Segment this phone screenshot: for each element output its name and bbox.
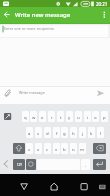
staticText: 12!? bbox=[17, 163, 22, 167]
staticText: n bbox=[72, 146, 75, 152]
staticText: t bbox=[60, 114, 62, 120]
button[interactable]: t bbox=[57, 111, 64, 122]
button[interactable] bbox=[0, 24, 110, 38]
button[interactable]: n bbox=[70, 143, 77, 154]
staticText: m bbox=[80, 146, 85, 152]
staticText: c bbox=[46, 146, 49, 152]
staticText: g bbox=[63, 130, 66, 136]
button[interactable]: a bbox=[26, 127, 33, 138]
button[interactable] bbox=[13, 176, 35, 196]
button[interactable]: r bbox=[48, 111, 55, 122]
staticText: Write message bbox=[19, 90, 45, 95]
staticText: d bbox=[46, 130, 49, 136]
button[interactable]: k bbox=[88, 127, 95, 138]
staticText: q bbox=[24, 114, 27, 120]
button[interactable]: y bbox=[66, 111, 73, 122]
button[interactable]: q bbox=[22, 111, 29, 122]
button[interactable]: x bbox=[35, 143, 42, 154]
staticText: h bbox=[72, 130, 75, 136]
staticText: w bbox=[32, 114, 36, 120]
button[interactable] bbox=[93, 143, 106, 154]
button[interactable]: b bbox=[61, 143, 68, 154]
button[interactable]: 12!? bbox=[13, 159, 25, 170]
button[interactable]: m bbox=[79, 143, 86, 154]
button[interactable]: p bbox=[101, 111, 108, 122]
button[interactable]: j bbox=[79, 127, 86, 138]
staticText: f bbox=[56, 130, 58, 136]
staticText: j bbox=[82, 130, 84, 136]
button[interactable]: s bbox=[35, 127, 42, 138]
staticText: l bbox=[100, 130, 102, 136]
button[interactable] bbox=[26, 159, 36, 170]
button[interactable] bbox=[0, 87, 110, 104]
button[interactable] bbox=[43, 176, 65, 196]
button[interactable]: h bbox=[70, 127, 77, 138]
staticText: Enter one or more recipients: bbox=[4, 26, 55, 31]
button[interactable]: i bbox=[84, 111, 91, 122]
button[interactable]: d bbox=[44, 127, 51, 138]
button[interactable]: f bbox=[53, 127, 60, 138]
staticText: r bbox=[51, 114, 53, 120]
button[interactable]: g bbox=[61, 127, 68, 138]
button[interactable] bbox=[99, 9, 110, 21]
staticText: s bbox=[37, 130, 40, 136]
staticText: y bbox=[68, 114, 71, 120]
button[interactable]: o bbox=[92, 111, 99, 122]
button[interactable]: . bbox=[81, 159, 90, 170]
staticText: b bbox=[63, 146, 66, 152]
staticText: a bbox=[28, 130, 31, 136]
button[interactable]: z bbox=[26, 143, 33, 154]
button[interactable]: e bbox=[39, 111, 46, 122]
button[interactable] bbox=[1, 9, 13, 21]
button[interactable] bbox=[13, 143, 25, 154]
staticText: Write new message bbox=[15, 11, 71, 19]
staticText: p bbox=[103, 114, 106, 120]
staticText: k bbox=[90, 130, 93, 136]
staticText: 20:21 bbox=[96, 1, 108, 7]
button[interactable] bbox=[73, 176, 95, 196]
staticText: e bbox=[41, 114, 44, 120]
staticText: . bbox=[85, 162, 87, 168]
button[interactable]: w bbox=[30, 111, 37, 122]
staticText: o bbox=[94, 114, 97, 120]
staticText: i bbox=[87, 114, 89, 120]
button[interactable]: u bbox=[75, 111, 82, 122]
button[interactable]: v bbox=[53, 143, 60, 154]
staticText: v bbox=[55, 146, 58, 152]
button[interactable] bbox=[93, 159, 106, 170]
staticText: u bbox=[77, 114, 80, 120]
button[interactable]: c bbox=[44, 143, 51, 154]
button[interactable] bbox=[95, 176, 110, 196]
staticText: x bbox=[37, 146, 40, 152]
staticText: z bbox=[28, 146, 31, 152]
button[interactable]: l bbox=[97, 127, 104, 138]
